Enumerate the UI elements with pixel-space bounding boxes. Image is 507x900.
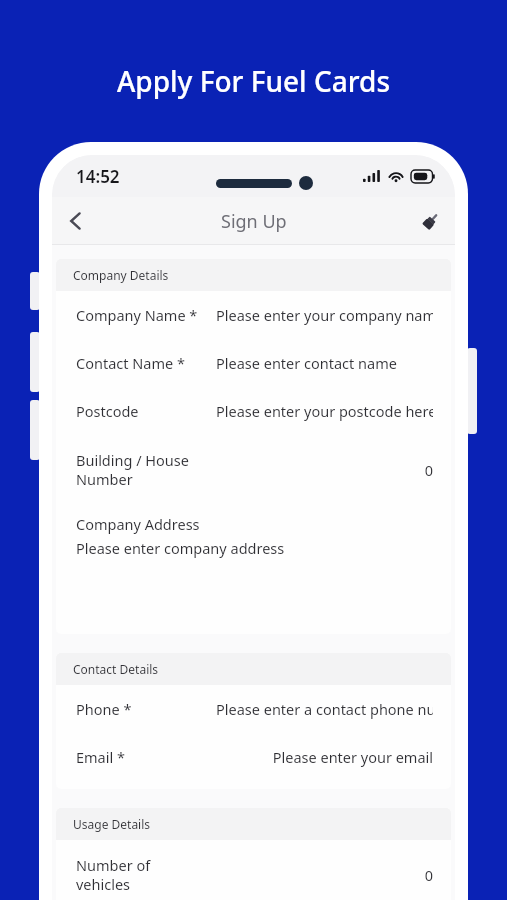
button[interactable]: Number of vehicles bbox=[56, 840, 451, 900]
staticText: Please enter company address bbox=[76, 538, 285, 558]
button[interactable]: Email * bbox=[56, 733, 451, 781]
staticText: Company Address bbox=[76, 514, 200, 534]
button[interactable]: Contact Name * bbox=[56, 339, 451, 387]
staticText: Email * bbox=[76, 747, 216, 767]
staticText: Company Details bbox=[73, 267, 169, 283]
staticText: Usage Details bbox=[73, 816, 151, 832]
button[interactable]: Postcode bbox=[56, 387, 451, 435]
staticText: 0 bbox=[424, 460, 433, 480]
staticText: 14:52 bbox=[76, 165, 120, 188]
staticText: Phone * bbox=[76, 699, 216, 719]
staticText: Building / House Number bbox=[76, 450, 189, 489]
staticText: Contact Details bbox=[73, 661, 159, 677]
staticText: Number of vehicles bbox=[76, 855, 151, 894]
staticText: 0 bbox=[424, 865, 433, 885]
staticText: Please enter your company name bbox=[216, 305, 433, 325]
button[interactable]: Phone * bbox=[56, 685, 451, 733]
button[interactable]: Company Name * bbox=[56, 291, 451, 339]
button[interactable]: Back bbox=[52, 197, 100, 245]
button[interactable]: Building / House Number bbox=[56, 435, 451, 498]
staticText: Sign Up bbox=[221, 209, 287, 234]
staticText: Postcode bbox=[76, 401, 216, 421]
staticText: Contact Name * bbox=[76, 353, 216, 373]
staticText: Please enter your postcode here bbox=[216, 401, 433, 421]
button[interactable]: Theme bbox=[407, 197, 455, 245]
staticText: Please enter your email bbox=[272, 747, 433, 767]
staticText: Company Name * bbox=[76, 305, 216, 325]
staticText: Please enter a contact phone number bbox=[216, 699, 433, 719]
staticText: Apply For Fuel Cards bbox=[117, 62, 391, 100]
staticText: Please enter contact name bbox=[216, 353, 433, 373]
